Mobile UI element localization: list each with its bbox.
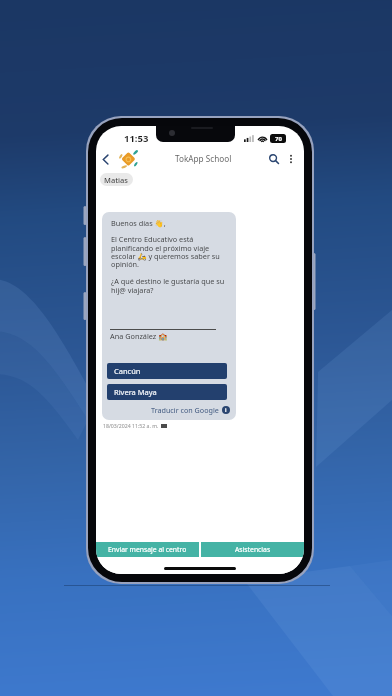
- staticText: 70: [275, 135, 282, 143]
- staticText: 18/03/2024 11:52 a. m.: [103, 422, 159, 429]
- staticText: El Centro Educativo está planificando el…: [111, 234, 228, 269]
- button[interactable]: Enviar mensaje al centro: [96, 542, 199, 557]
- button[interactable]: Cancún: [107, 363, 227, 379]
- button[interactable]: Back: [97, 151, 113, 167]
- staticText: Traducir con Google: [151, 405, 219, 415]
- button[interactable]: Rivera Maya: [107, 384, 227, 400]
- button[interactable]: Search: [265, 150, 283, 168]
- staticText: Enviar mensaje al centro: [108, 545, 187, 554]
- staticText: Ana González 🏫: [110, 331, 168, 341]
- staticText: Cancún: [114, 366, 141, 376]
- button[interactable]: Asistencias: [201, 542, 304, 557]
- staticText: Buenos días 👋,: [111, 218, 166, 228]
- staticText: Matias: [104, 175, 129, 185]
- button[interactable]: More options: [283, 151, 299, 167]
- button[interactable]: Matias: [100, 173, 133, 186]
- staticText: i: [225, 407, 227, 414]
- staticText: 11:53: [124, 132, 149, 145]
- staticText: Asistencias: [235, 545, 271, 554]
- staticText: Rivera Maya: [114, 387, 157, 397]
- staticText: TokApp School: [175, 153, 232, 164]
- staticText: ¿A qué destino le gustaría que su hij@ v…: [111, 276, 228, 295]
